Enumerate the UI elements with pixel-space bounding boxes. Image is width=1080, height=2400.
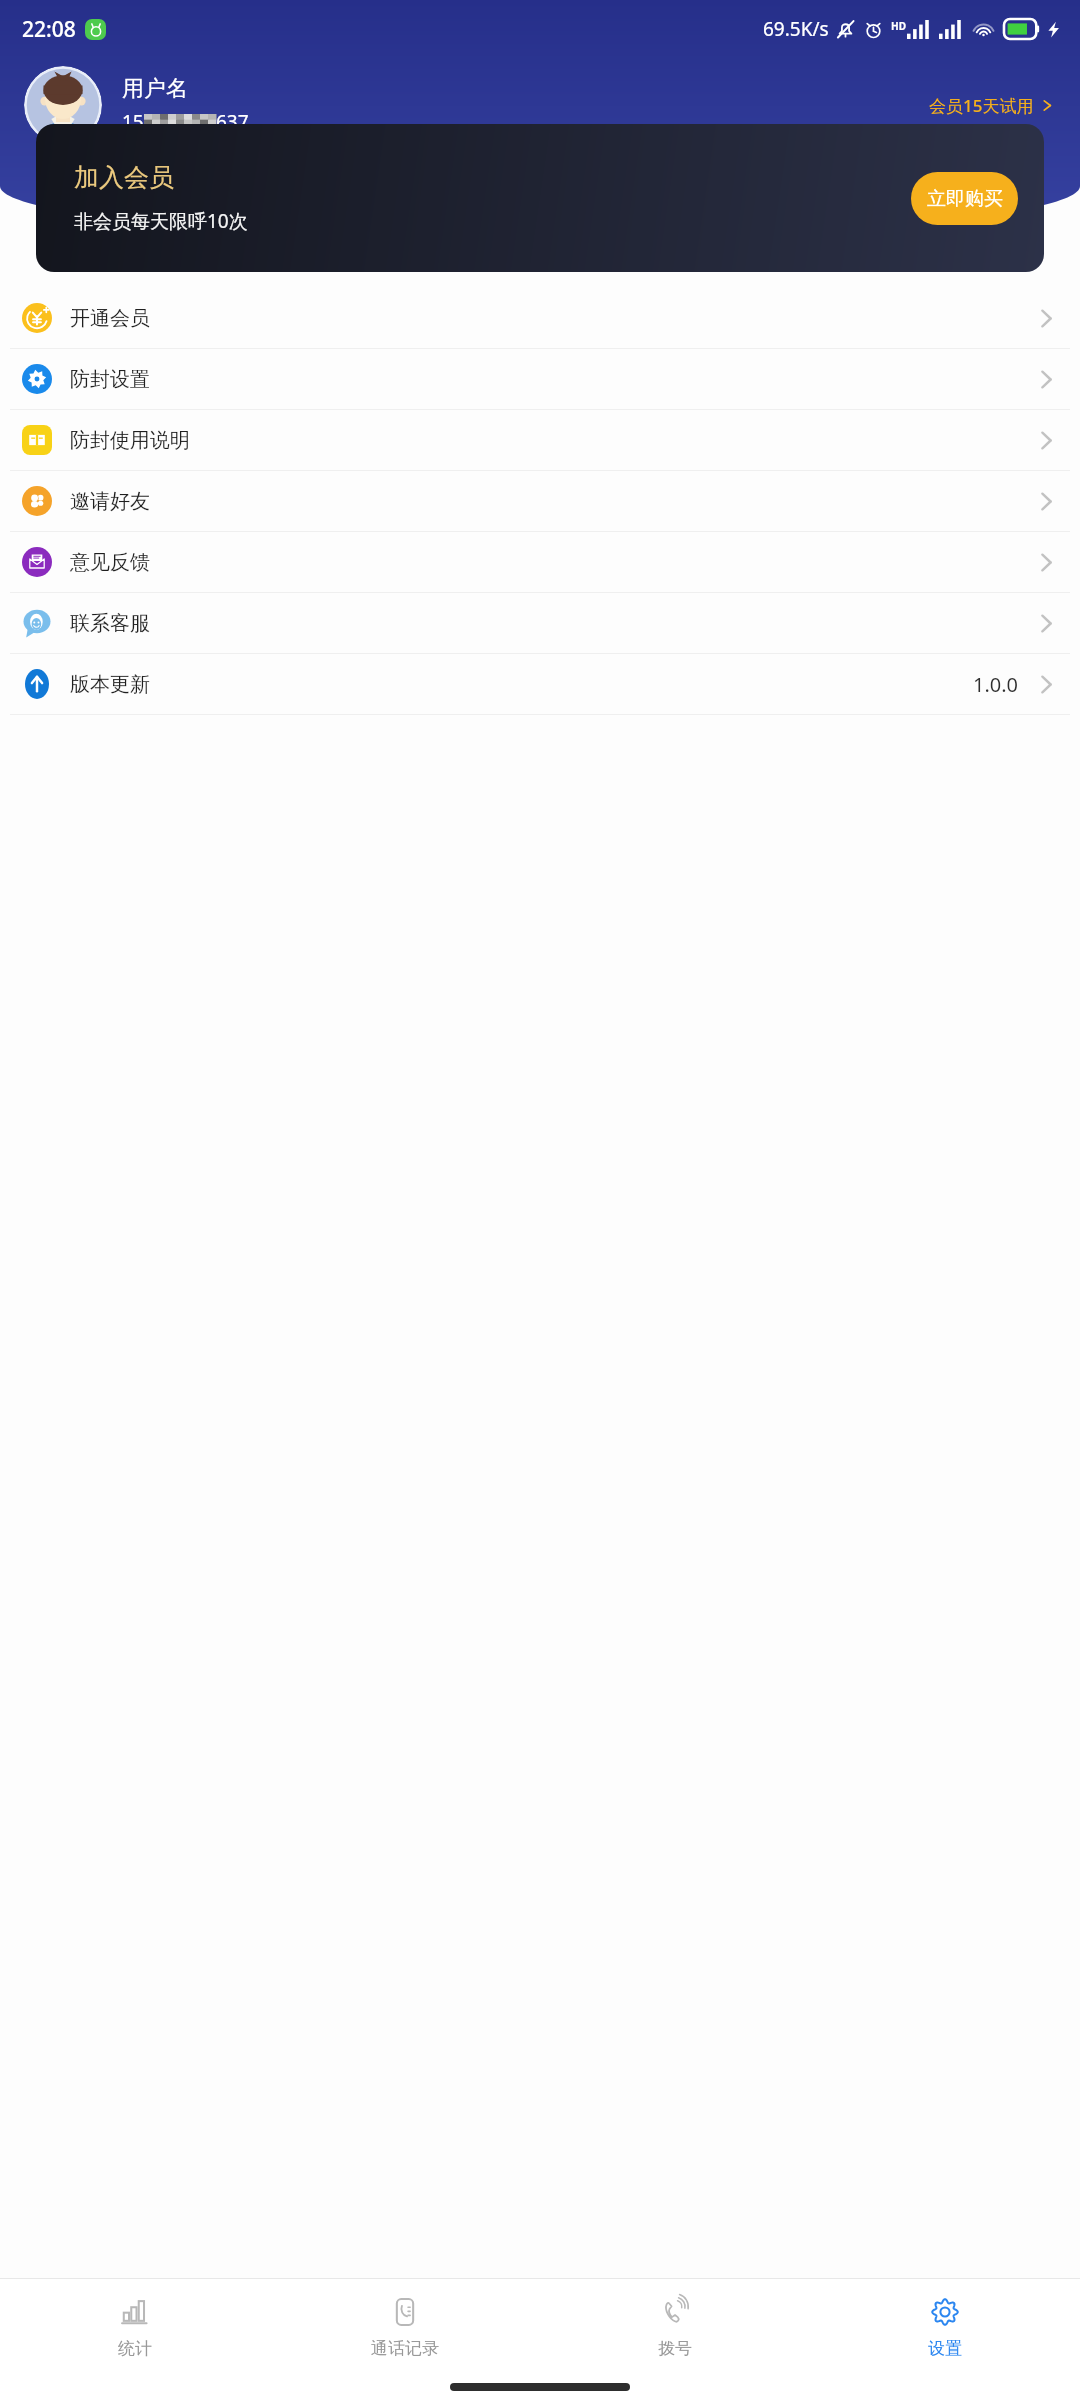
staticText: 会员15天试用 [929, 94, 1034, 117]
button[interactable]: 会员15天试用 [923, 88, 1060, 123]
button[interactable]: 立即购买 [911, 172, 1018, 225]
staticText: 637 [216, 109, 249, 135]
staticText: 通话记录 [371, 2338, 439, 2359]
staticText: 意见反馈 [70, 550, 150, 575]
staticText: 版本更新 [70, 672, 150, 697]
staticText: HD [891, 19, 906, 33]
staticText: 15 [122, 109, 144, 135]
button[interactable]: 通话记录 [270, 2279, 540, 2374]
staticText: 69.5K/s [763, 16, 829, 42]
button[interactable]: 邀请好友 [0, 471, 1080, 531]
button[interactable]: 统计 [0, 2279, 270, 2374]
button[interactable]: 防封使用说明 [0, 410, 1080, 470]
button[interactable]: 防封设置 [0, 349, 1080, 409]
staticText: 开通会员 [70, 306, 150, 331]
staticText: 加入会员 [74, 162, 174, 193]
button[interactable]: 拨号 [540, 2279, 810, 2374]
button[interactable]: 开通会员 [0, 288, 1080, 348]
button[interactable]: 版本更新 [0, 654, 1080, 714]
button[interactable]: Profile avatar [24, 66, 102, 144]
button[interactable]: 联系客服 [0, 593, 1080, 653]
staticText: 统计 [118, 2338, 152, 2359]
staticText: 1.0.0 [973, 671, 1019, 698]
button[interactable]: 设置 [810, 2279, 1080, 2374]
staticText: 22:08 [22, 15, 76, 44]
button[interactable]: 加入会员 [36, 124, 1044, 272]
staticText: 非会员每天限呼10次 [74, 208, 248, 234]
staticText: 设置 [928, 2338, 962, 2359]
staticText: 邀请好友 [70, 489, 150, 514]
staticText: 防封设置 [70, 367, 150, 392]
button[interactable]: 意见反馈 [0, 532, 1080, 592]
staticText: 用户名 [122, 75, 188, 103]
staticText: 拨号 [658, 2338, 692, 2359]
staticText: 防封使用说明 [70, 428, 190, 453]
staticText: 立即购买 [927, 187, 1003, 211]
staticText: 联系客服 [70, 611, 150, 636]
